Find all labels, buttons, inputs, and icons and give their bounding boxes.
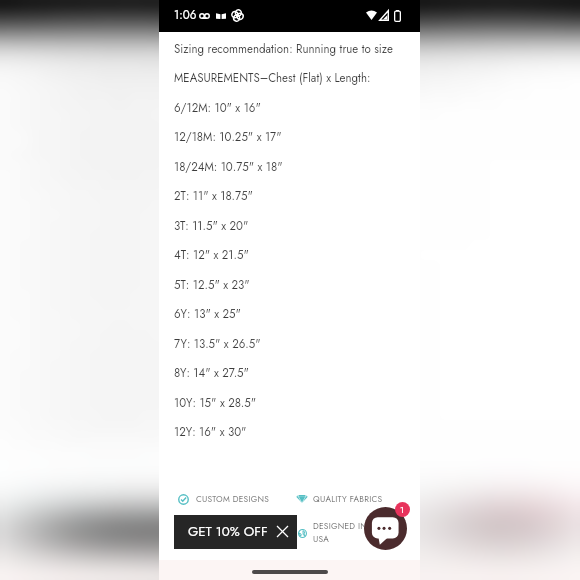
staticText: 4T: 12" x 21.5" [174,247,249,264]
button[interactable]: Custom designs [178,494,189,505]
staticText: CUSTOM DESIGNS [196,493,270,505]
staticText: Sizing recommendation: Running true to s… [174,41,393,58]
staticText: 1:06 [174,7,197,24]
staticText: 5T: 12.5" x 23" [174,277,250,294]
button[interactable]: GET 10% OFF [174,515,297,549]
staticText: 12/18M: 10.25" x 17" [174,129,282,146]
button[interactable]: Open chat [364,507,407,550]
staticText: 1 [400,503,405,516]
staticText: GET 10% OFF [188,522,268,541]
staticText: 6Y: 13" x 25" [174,306,241,323]
staticText: 2T: 11" x 18.75" [174,188,253,205]
staticText: 6/12M: 10" x 16" [174,100,261,117]
staticText: 10Y: 15" x 28.5" [174,395,257,412]
staticText: MEASUREMENTS–Chest (Flat) x Length: [174,70,371,87]
staticText: 12Y: 16" x 30" [174,424,247,441]
staticText: 3T: 11.5" x 20" [174,218,249,235]
other: Dismiss offer [277,526,288,537]
staticText: QUALITY FABRICS [313,493,383,505]
staticText: DESIGNED IN [313,520,368,532]
staticText: 8Y: 14" x 27.5" [174,365,249,382]
staticText: USA [313,533,330,545]
staticText: 7Y: 13.5" x 26.5" [174,336,261,353]
staticText: 18/24M: 10.75" x 18" [174,159,283,176]
